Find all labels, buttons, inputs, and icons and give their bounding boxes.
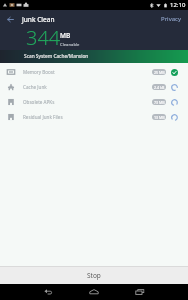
button[interactable]: Memory Boost	[0, 64, 188, 79]
staticText: Cleanable	[60, 42, 80, 48]
staticText: 344	[26, 24, 61, 46]
button[interactable]: Recents	[132, 284, 148, 300]
staticText: Memory Boost	[23, 69, 55, 75]
staticText: 25 MB	[154, 70, 165, 75]
button[interactable]: Residual Junk Files	[0, 109, 188, 124]
staticText: Junk Clean	[22, 15, 55, 24]
staticText: Cache Junk	[23, 84, 47, 90]
button[interactable]: Back	[40, 284, 56, 300]
staticText: MB	[60, 31, 71, 40]
button[interactable]: Home	[86, 284, 102, 300]
staticText: 13 MB	[154, 115, 165, 120]
button[interactable]: Back	[0, 10, 20, 28]
staticText: Obsolete APKs	[23, 99, 55, 105]
staticText: 12:10	[170, 1, 186, 9]
staticText: 2.4 kB	[154, 85, 165, 90]
button[interactable]: Stop	[0, 267, 188, 284]
button[interactable]: Privacy	[155, 10, 188, 28]
button[interactable]: Obsolete APKs	[0, 94, 188, 109]
staticText: Scan System Cache/Mansion	[24, 53, 89, 60]
button[interactable]: Cache Junk	[0, 79, 188, 94]
staticText: Stop	[87, 271, 101, 280]
staticText: 73 MB	[154, 100, 165, 105]
staticText: Privacy	[161, 15, 182, 23]
staticText: Residual Junk Files	[23, 114, 63, 120]
